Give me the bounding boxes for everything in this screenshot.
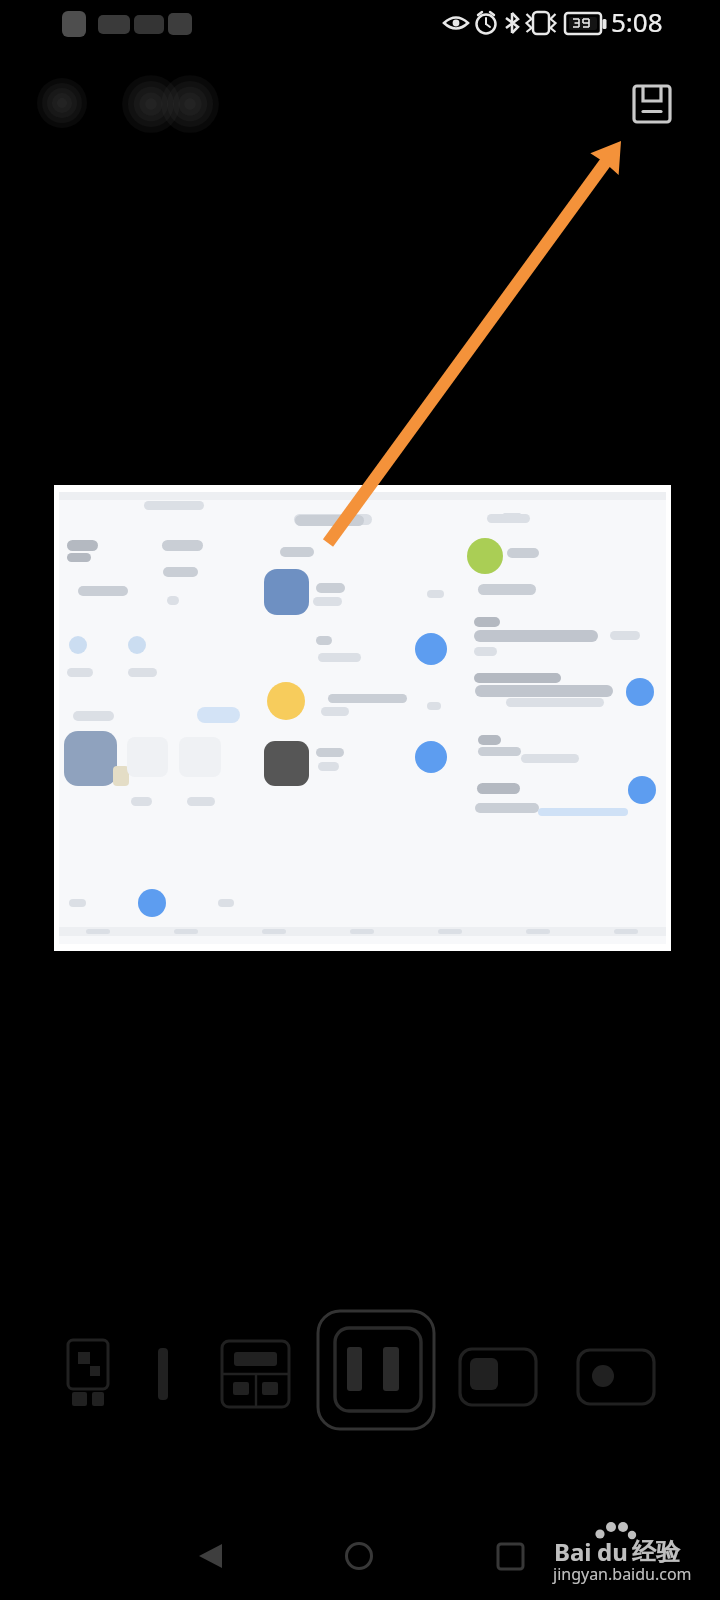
staticText: jingyan.baidu.com <box>553 1563 692 1585</box>
button[interactable]: Pen <box>99 1310 227 1438</box>
button[interactable]: Redo <box>158 70 224 138</box>
button[interactable]: Home <box>314 1511 404 1600</box>
button[interactable]: Recents <box>465 1511 555 1600</box>
button[interactable]: Mosaic <box>24 1310 152 1438</box>
staticText: 5:08 <box>611 4 663 39</box>
button[interactable]: Layout <box>192 1310 320 1438</box>
button[interactable]: Screenshot preview <box>54 485 671 951</box>
staticText: du <box>597 1535 628 1568</box>
button[interactable]: Frame <box>434 1310 562 1438</box>
button[interactable]: Add <box>28 70 96 138</box>
staticText: Bai <box>554 1535 592 1568</box>
button[interactable]: Back <box>163 1511 253 1600</box>
button[interactable]: Compare <box>312 1310 440 1438</box>
button[interactable]: Undo <box>118 70 184 138</box>
button[interactable]: Caption <box>552 1310 680 1438</box>
staticText: 经验 <box>632 1537 680 1567</box>
button[interactable]: Save <box>616 68 688 140</box>
